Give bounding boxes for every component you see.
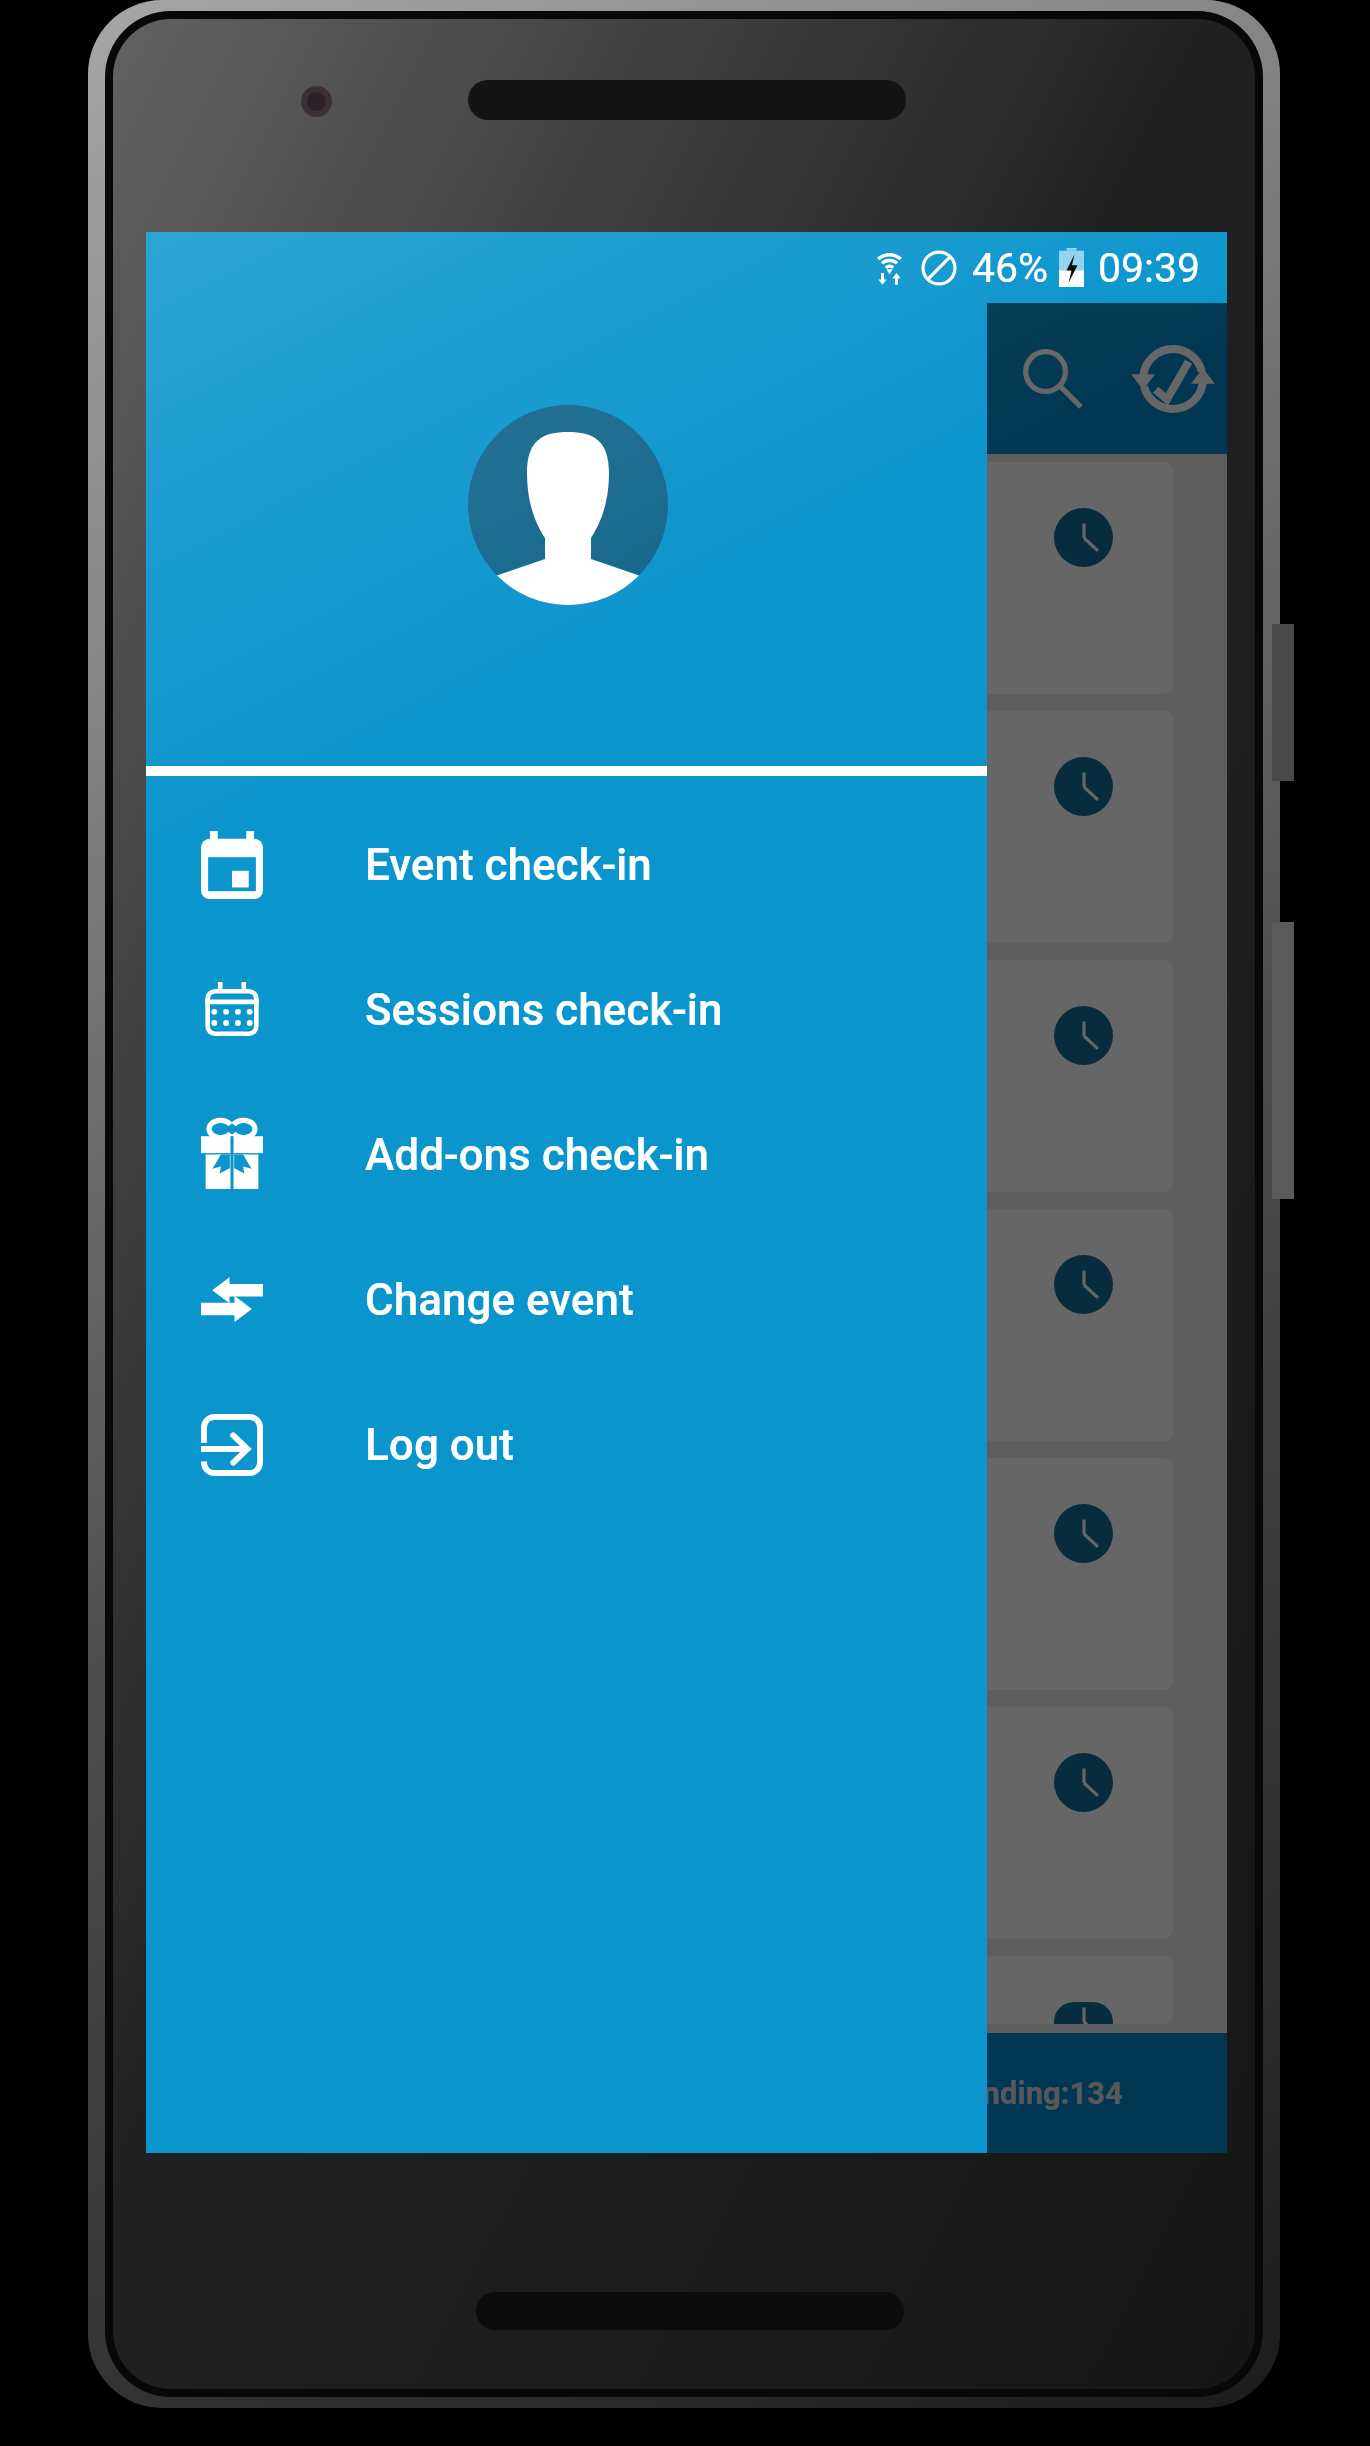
staticText: Carlos Fernandez: [228, 988, 590, 1042]
staticText: Pending:134: [946, 2075, 1123, 2111]
staticText: Add-ons check-in: [365, 1129, 709, 1181]
button[interactable]: Elena Sanchez: [196, 1707, 1173, 1939]
button[interactable]: Event check-in: [146, 792, 987, 937]
staticText: Event check-in: [365, 839, 652, 891]
button[interactable]: Ana Martinez: [196, 1209, 1173, 1441]
staticText: Ticket #10233: [228, 1104, 446, 1144]
staticText: Maria Gonzalez: [228, 739, 550, 793]
staticText: Ticket #10232: [228, 855, 446, 895]
staticText: Log out: [365, 1419, 514, 1471]
staticText: ana.m@mail.com: [228, 1305, 494, 1345]
staticText: 09:39: [1098, 244, 1201, 292]
button[interactable]: Pedro Morales: [196, 1956, 1173, 2024]
button[interactable]: Jose Ramirez: [196, 462, 1173, 694]
button[interactable]: Search: [988, 303, 1118, 454]
staticText: Ana Martinez: [228, 1237, 505, 1291]
button[interactable]: Log out: [146, 1372, 987, 1517]
button[interactable]: Sessions check-in: [146, 937, 987, 1082]
button[interactable]: Add-ons check-in: [146, 1082, 987, 1227]
button[interactable]: Sync: [1118, 303, 1227, 454]
staticText: maria.g@mail.com: [228, 807, 514, 847]
staticText: Change event: [365, 1274, 634, 1326]
staticText: 46%: [972, 244, 1049, 292]
button[interactable]: Maria Gonzalez: [196, 711, 1173, 943]
button[interactable]: Carlos Fernandez: [196, 960, 1173, 1192]
staticText: Jose Ramirez: [228, 490, 511, 544]
button[interactable]: Luis Rodriguez: [196, 1458, 1173, 1690]
button[interactable]: Change event: [146, 1227, 987, 1372]
staticText: Sessions check-in: [365, 984, 723, 1036]
staticText: jose.ramirez@mail.com: [228, 558, 585, 598]
